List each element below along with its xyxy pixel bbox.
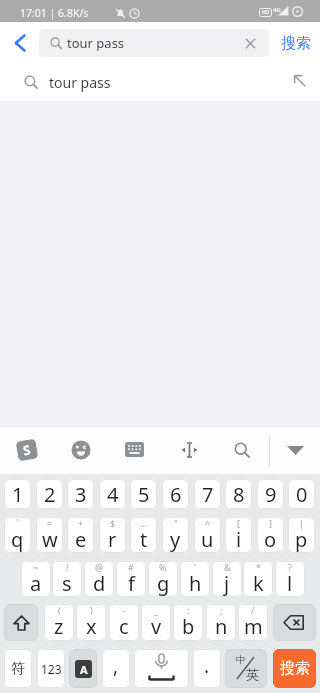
staticText: a [30,570,42,597]
staticText: % [159,561,167,573]
staticText: q [11,526,24,553]
button[interactable]: ( [44,604,74,641]
staticText: o [264,526,277,553]
button[interactable]: ? [275,561,305,597]
staticText: 搜索 [281,34,311,53]
button[interactable]: $ [99,517,126,553]
button[interactable] [134,649,189,688]
staticText: * [256,561,261,573]
staticText: . [204,653,210,679]
staticText: u [201,526,214,553]
staticText: i [236,526,242,553]
button[interactable]: " [162,517,189,553]
button[interactable]: | [288,517,315,553]
button[interactable]: = [36,517,63,553]
button[interactable]: 7 [194,479,221,509]
button[interactable]: 搜索 [272,22,320,64]
staticText: @ [95,561,104,573]
button[interactable]: 0 [288,479,315,509]
staticText: ] [269,517,272,529]
button[interactable]: . [193,649,221,688]
button[interactable]: 123 [37,649,65,688]
staticText: $ [110,517,116,529]
staticText: [ [237,517,240,529]
staticText: 0 [296,481,308,508]
button[interactable]: 4 [99,479,126,509]
button[interactable]: + [67,517,94,553]
staticText: # [128,561,134,573]
button[interactable]: @ [84,561,114,597]
staticText: f [128,570,135,597]
staticText: tour pass [67,34,125,52]
button[interactable]: / [238,604,268,641]
button[interactable]: # [116,561,146,597]
button[interactable]: ` [4,517,31,553]
button[interactable]: 6 [162,479,189,509]
button[interactable]: ; [206,604,236,641]
button[interactable]: ' [180,561,210,597]
staticText: ) [90,604,93,616]
staticText: 4G [273,6,281,14]
button[interactable]: 2 [36,479,63,509]
button[interactable] [4,604,38,641]
button[interactable] [273,604,316,641]
staticText: ( [58,604,61,616]
staticText: y [170,526,181,553]
button[interactable]: ] [257,517,284,553]
button[interactable]: * [243,561,273,597]
button[interactable]: 中 [225,649,267,688]
button[interactable]: & [212,561,242,597]
staticText: d [93,570,106,597]
button[interactable]: ) [76,604,106,641]
button[interactable] [283,440,307,460]
staticText: … [140,517,148,529]
button[interactable] [71,440,91,460]
staticText: " [174,517,178,529]
staticText: 1 [12,481,24,508]
button[interactable]: : [173,604,203,641]
staticText: 9 [265,481,277,508]
staticText: m [244,613,263,640]
button[interactable]: tour pass [39,29,269,57]
button[interactable]: ^ [194,517,221,553]
staticText: w [42,526,58,553]
button[interactable]: A [69,649,97,688]
button[interactable]: 8 [225,479,252,509]
button[interactable] [181,442,198,458]
staticText: = [47,517,53,529]
button[interactable]: 9 [257,479,284,509]
button[interactable]: 1 [4,479,31,509]
staticText: ? [288,561,292,573]
staticText: 7 [202,481,214,508]
staticText: tour pass [49,73,111,92]
staticText: 8 [233,481,245,508]
staticText: 123 [41,661,62,677]
button[interactable]: … [130,517,157,553]
button[interactable] [125,442,144,457]
staticText: 2 [44,481,56,508]
button[interactable]: % [148,561,178,597]
staticText: h [189,570,202,597]
staticText: n [215,613,228,640]
button[interactable]: ! [52,561,82,597]
staticText: 3 [75,481,87,508]
button[interactable]: tour pass [0,64,320,101]
button[interactable]: ~ [21,561,51,597]
button[interactable] [4,25,36,61]
button[interactable]: _ [141,604,171,641]
staticText: S [21,440,32,459]
staticText: HD [262,9,270,16]
staticText: b [182,613,195,640]
button[interactable]: 5 [130,479,157,509]
staticText: | [299,517,304,529]
button[interactable]: - [109,604,139,641]
button[interactable]: [ [225,517,252,553]
button[interactable]: , [102,649,130,688]
button[interactable] [239,32,261,54]
button[interactable]: 符 [4,649,32,688]
staticText: , [113,653,119,679]
button[interactable]: S [15,438,39,462]
button[interactable]: 搜索 [273,649,316,688]
button[interactable]: 3 [67,479,94,509]
button[interactable] [234,442,250,458]
